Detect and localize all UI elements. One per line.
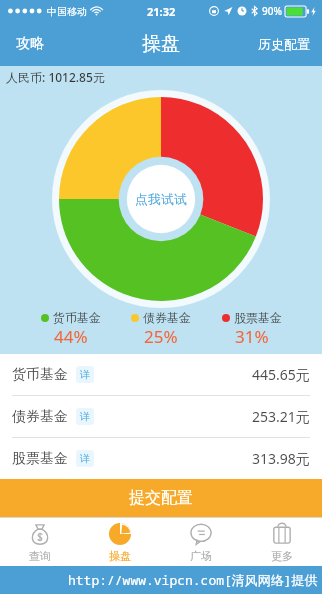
- staticText: 详: [80, 410, 90, 423]
- staticText: 445.65元: [252, 365, 310, 384]
- button[interactable]: 攻略: [0, 22, 60, 66]
- staticText: 点我试试: [135, 191, 187, 207]
- staticText: 更多: [271, 549, 293, 563]
- staticText: 人民币: 1012.85元: [6, 69, 105, 85]
- button[interactable]: 操盘: [80, 518, 160, 566]
- staticText: 31%: [235, 325, 269, 348]
- staticText: 广场: [190, 549, 212, 563]
- button[interactable]: 债券基金: [0, 396, 322, 437]
- staticText: 货币基金: [12, 366, 68, 384]
- staticText: 253.21元: [252, 407, 310, 426]
- button[interactable]: 更多: [241, 518, 322, 566]
- staticText: 21:32: [147, 4, 176, 19]
- staticText: 操盘: [142, 32, 180, 56]
- staticText: 25%: [144, 325, 178, 348]
- staticText: 股票基金: [234, 310, 282, 325]
- staticText: 313.98元: [252, 449, 310, 468]
- button[interactable]: 货币基金: [0, 354, 322, 395]
- button[interactable]: 历史配置: [246, 22, 322, 66]
- staticText: 货币基金: [53, 310, 101, 325]
- button[interactable]: 详: [76, 366, 94, 383]
- staticText: 历史配置: [258, 36, 310, 52]
- button[interactable]: 详: [76, 450, 94, 467]
- staticText: 股票基金: [12, 450, 68, 468]
- staticText: http://www.vipcn.com[清风网络]提供: [68, 571, 318, 589]
- staticText: 详: [80, 368, 90, 381]
- staticText: 债券基金: [12, 408, 68, 426]
- staticText: 44%: [54, 325, 88, 348]
- staticText: 中国移动: [47, 5, 87, 18]
- button[interactable]: 股票基金: [0, 438, 322, 479]
- staticText: 详: [80, 452, 90, 465]
- staticText: 债券基金: [143, 310, 191, 325]
- staticText: 提交配置: [129, 488, 193, 508]
- button[interactable]: 详: [76, 408, 94, 425]
- button[interactable]: 查询: [0, 518, 80, 566]
- staticText: 操盘: [109, 549, 131, 563]
- button[interactable]: 广场: [160, 518, 241, 566]
- button[interactable]: 点我试试: [52, 90, 270, 308]
- button[interactable]: 提交配置: [0, 479, 322, 517]
- staticText: 攻略: [16, 35, 44, 53]
- staticText: 查询: [29, 549, 51, 563]
- staticText: 90%: [262, 4, 282, 18]
